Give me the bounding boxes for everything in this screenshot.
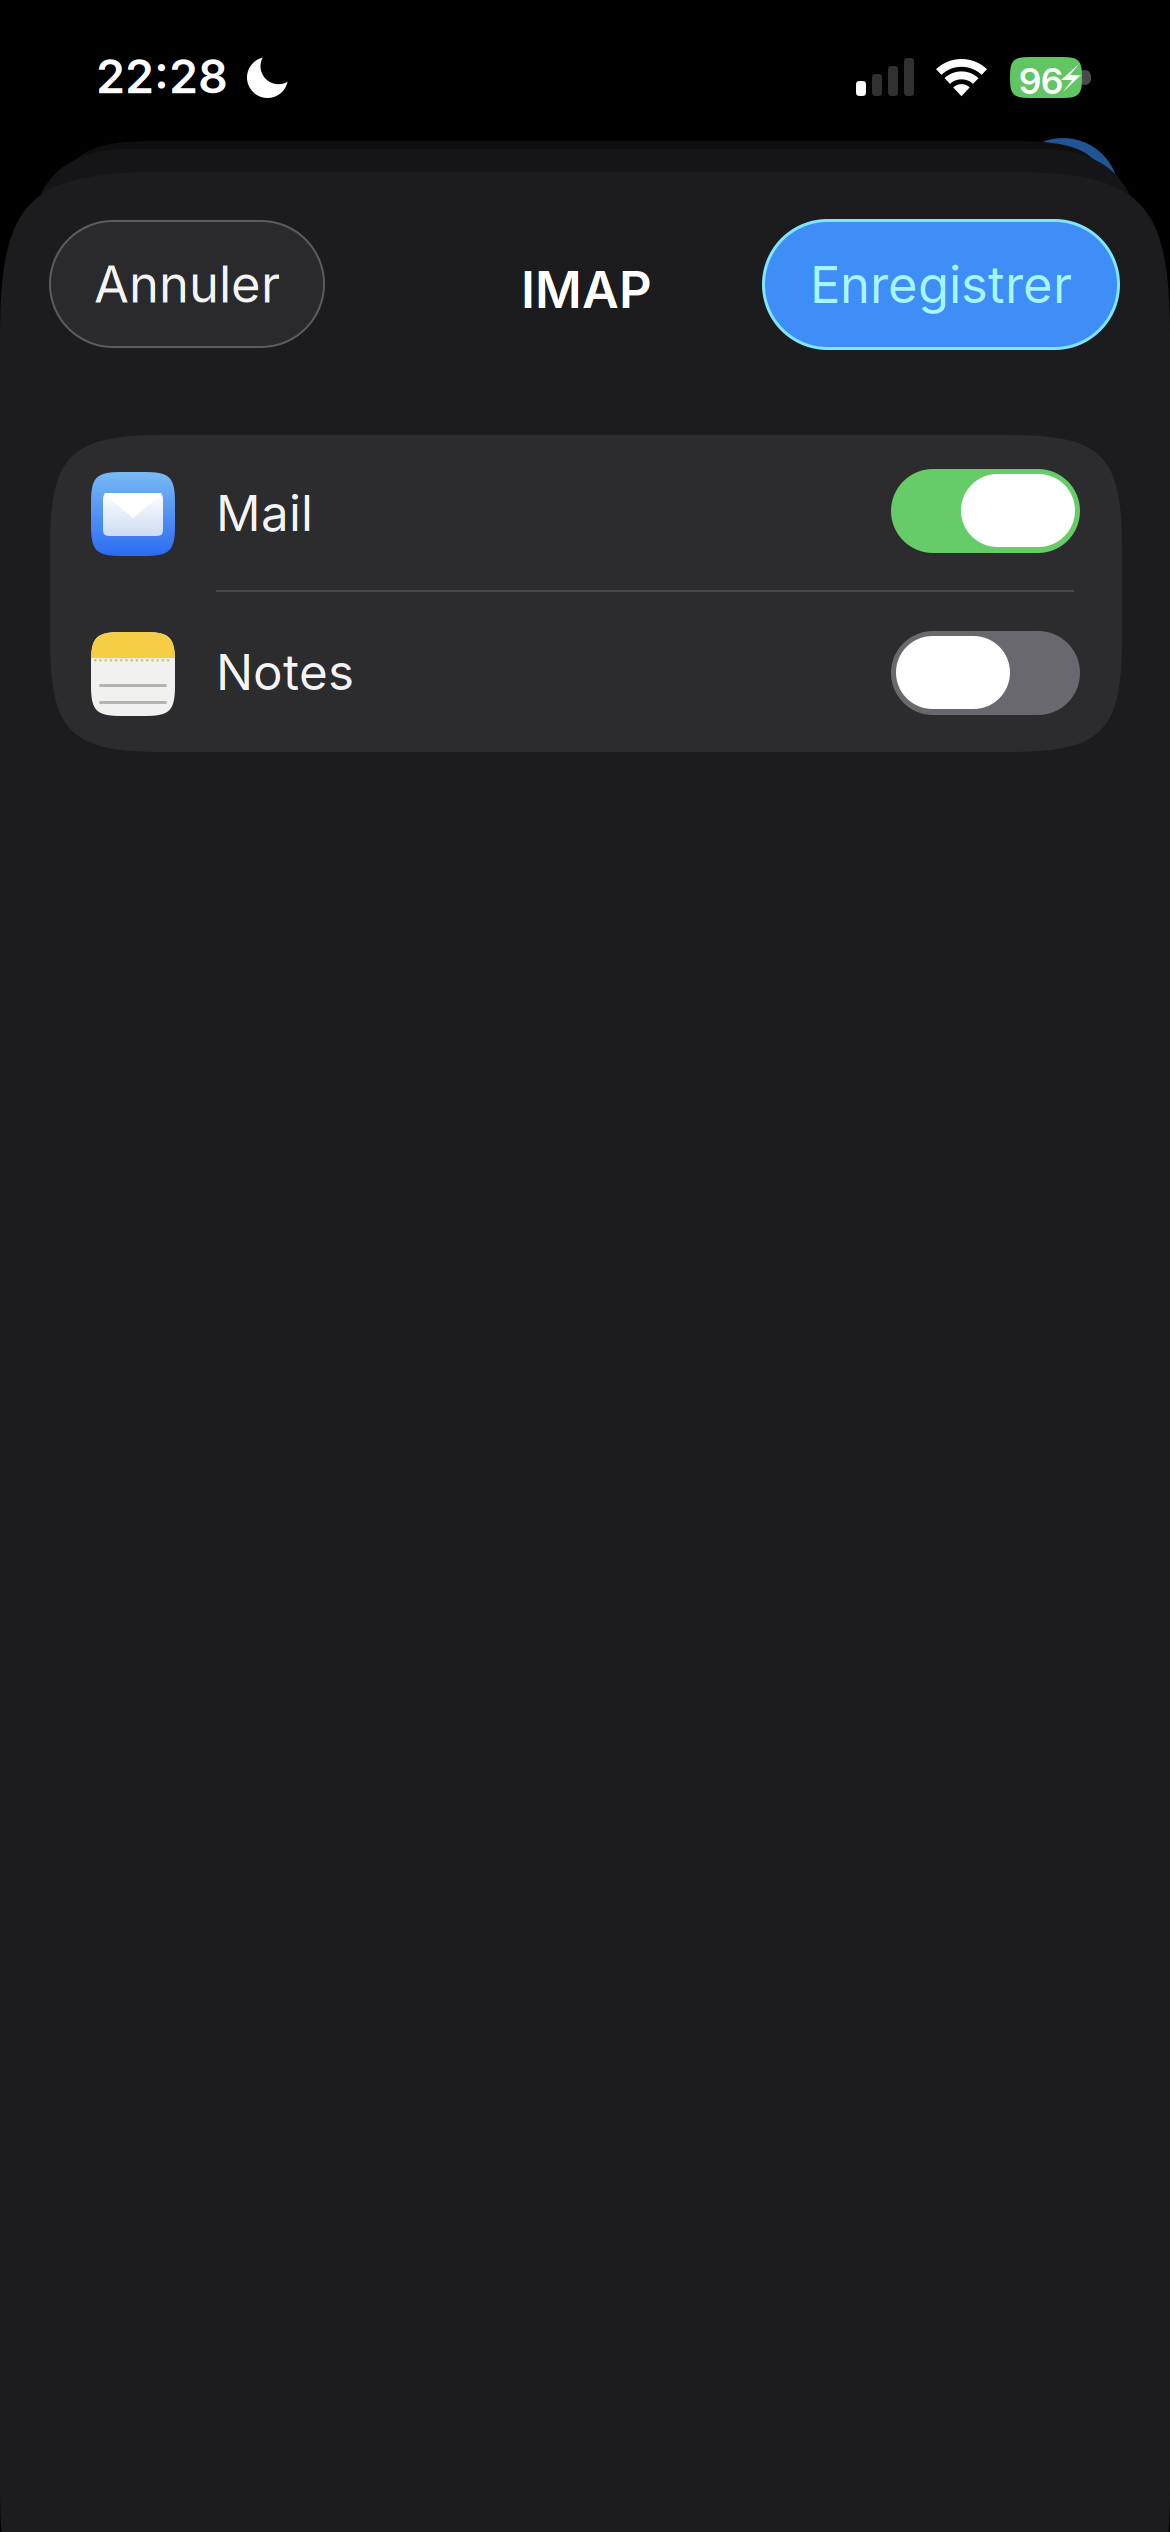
staticText: 96 [1019,59,1063,103]
staticText: Mail [216,483,313,543]
button[interactable]: Mail [50,435,1122,591]
staticText: IMAP [521,259,652,320]
button[interactable]: Notes [50,594,1122,751]
staticText: Notes [216,642,354,702]
staticText: Enregistrer [810,254,1072,315]
button[interactable]: Annuler [49,220,325,348]
staticText: 22:28 [96,48,228,104]
button[interactable]: Enregistrer [762,219,1120,350]
staticText: Annuler [94,253,280,315]
